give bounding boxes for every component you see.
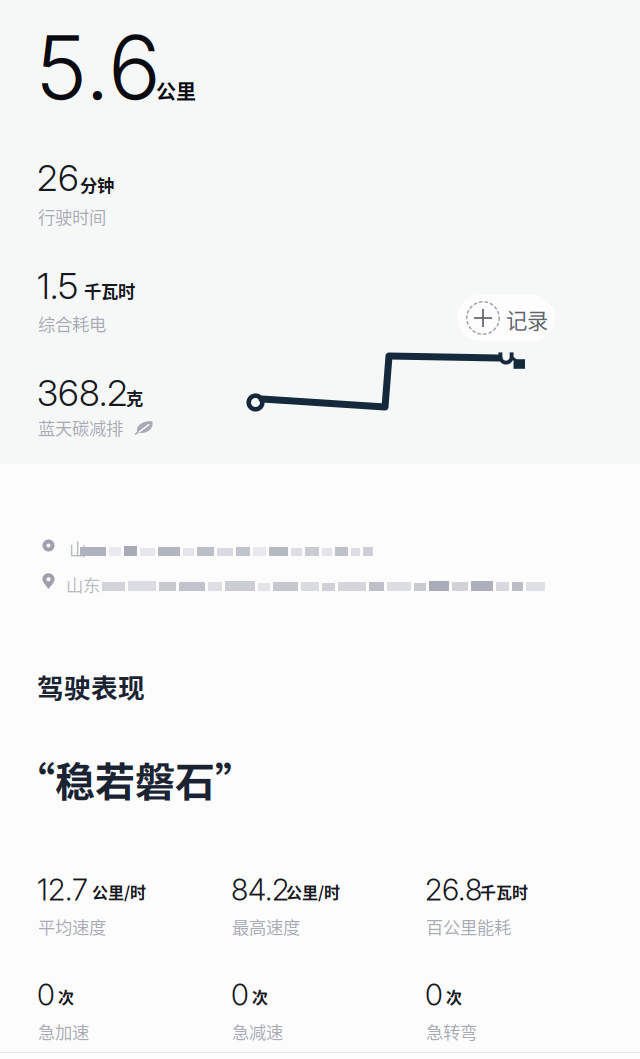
staticText: 千瓦时 [84,278,135,303]
staticText: 千瓦时 [480,880,528,903]
staticText: 26 [37,156,79,200]
staticText: 0 [425,977,443,1012]
staticText: 0 [37,977,55,1012]
staticText: 368.2 [37,371,128,415]
staticText: 山 [69,536,86,561]
staticText: 最高速度 [232,914,300,939]
staticText: 次 [58,985,74,1008]
staticText: 公里/时 [286,880,340,903]
staticText: 行驶时间 [38,204,106,229]
staticText: 1.5 [37,264,78,308]
staticText: 5.6 [35,14,161,120]
staticText: 百公里能耗 [426,914,511,939]
staticText: 84.2 [231,872,289,907]
staticText: 分钟 [80,172,114,197]
staticText: 0 [231,977,249,1012]
staticText: 12.7 [37,872,88,907]
staticText: 次 [252,985,268,1008]
staticText: 综合耗电 [38,311,106,336]
staticText: 公里 [156,76,196,105]
staticText: 次 [446,985,462,1008]
staticText: 急转弯 [426,1019,477,1044]
staticText: 山东 [66,572,100,597]
staticText: 蓝天碳减排 [38,415,123,440]
button[interactable]: 记录 [457,295,555,341]
staticText: 驾驶表现 [37,667,145,706]
staticText: 克 [126,385,143,410]
staticText: “稳若磐石” [15,750,255,808]
staticText: 急加速 [38,1019,89,1044]
staticText: 记录 [506,304,548,335]
staticText: 26.8 [425,872,482,907]
staticText: 公里/时 [92,880,146,903]
staticText: 急减速 [232,1019,283,1044]
staticText: 平均速度 [38,914,106,939]
